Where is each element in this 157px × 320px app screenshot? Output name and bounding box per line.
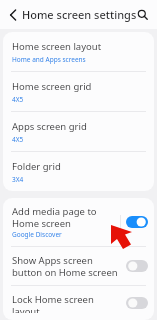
staticText: 4X5 xyxy=(12,95,24,104)
staticText: Lock Home screen layout xyxy=(12,293,122,313)
staticText: Folder grid xyxy=(12,160,61,173)
button[interactable]: Off xyxy=(126,260,148,272)
button[interactable]: Search xyxy=(134,6,151,23)
button[interactable]: Show Apps screen button on Home screen xyxy=(3,247,154,285)
staticText: 3X4 xyxy=(12,175,24,184)
staticText: Home and Apps screens xyxy=(12,55,86,64)
staticText: Home screen grid xyxy=(12,80,92,93)
button[interactable]: Lock Home screen layout xyxy=(3,286,154,320)
staticText: Home screen settings xyxy=(22,7,137,22)
button[interactable]: Folder grid xyxy=(3,152,154,191)
staticText: Show Apps screen button on Home screen xyxy=(12,254,122,278)
button[interactable]: Home screen layout xyxy=(3,32,154,71)
button[interactable]: Back xyxy=(4,6,22,24)
staticText: Home screen layout xyxy=(12,40,102,53)
button[interactable]: Apps screen grid xyxy=(3,112,154,151)
staticText: 4X5 xyxy=(12,135,24,144)
staticText: Apps screen grid xyxy=(12,120,87,133)
button[interactable]: On xyxy=(126,216,148,228)
staticText: Google Discover xyxy=(12,230,62,239)
button[interactable]: Off xyxy=(126,297,148,309)
button[interactable]: Add media page to Home screen xyxy=(3,198,154,246)
staticText: Add media page to Home screen xyxy=(12,205,116,229)
button[interactable]: Home screen grid xyxy=(3,72,154,111)
